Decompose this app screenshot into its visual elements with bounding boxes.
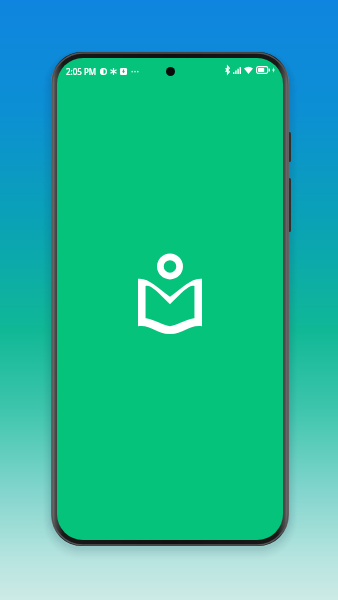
other: Front camera (166, 67, 175, 76)
button[interactable]: App logo (138, 253, 202, 331)
staticText: 2:05 PM (66, 66, 97, 77)
